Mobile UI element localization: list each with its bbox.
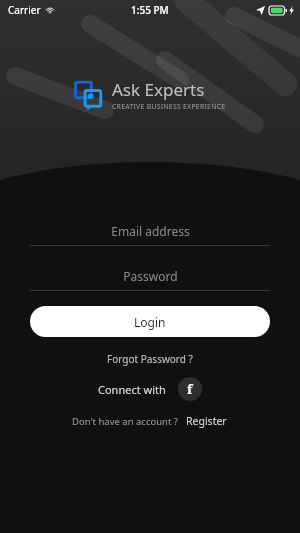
button[interactable]: Register [184, 411, 229, 431]
button[interactable]: Forgot Password ? [99, 349, 201, 369]
staticText: Password [123, 268, 178, 284]
staticText: f [187, 380, 193, 398]
staticText: Forgot Password ? [107, 352, 193, 366]
button[interactable]: Password [30, 265, 270, 291]
staticText: Carrier [8, 3, 41, 17]
staticText: Email address [111, 223, 190, 239]
button[interactable]: Email address [30, 220, 270, 246]
staticText: 1:55 PM [131, 3, 169, 17]
staticText: Register [186, 414, 227, 428]
staticText: Don't have an account ? [72, 415, 178, 428]
staticText: Connect with [98, 382, 166, 397]
button[interactable]: Login [30, 306, 270, 337]
staticText: Login [134, 314, 166, 330]
button[interactable]: Connect with Facebook [178, 377, 202, 401]
staticText: CREATIVE BUSINESS EXPERIENCE [112, 102, 226, 112]
staticText: Ask Experts [112, 78, 205, 101]
